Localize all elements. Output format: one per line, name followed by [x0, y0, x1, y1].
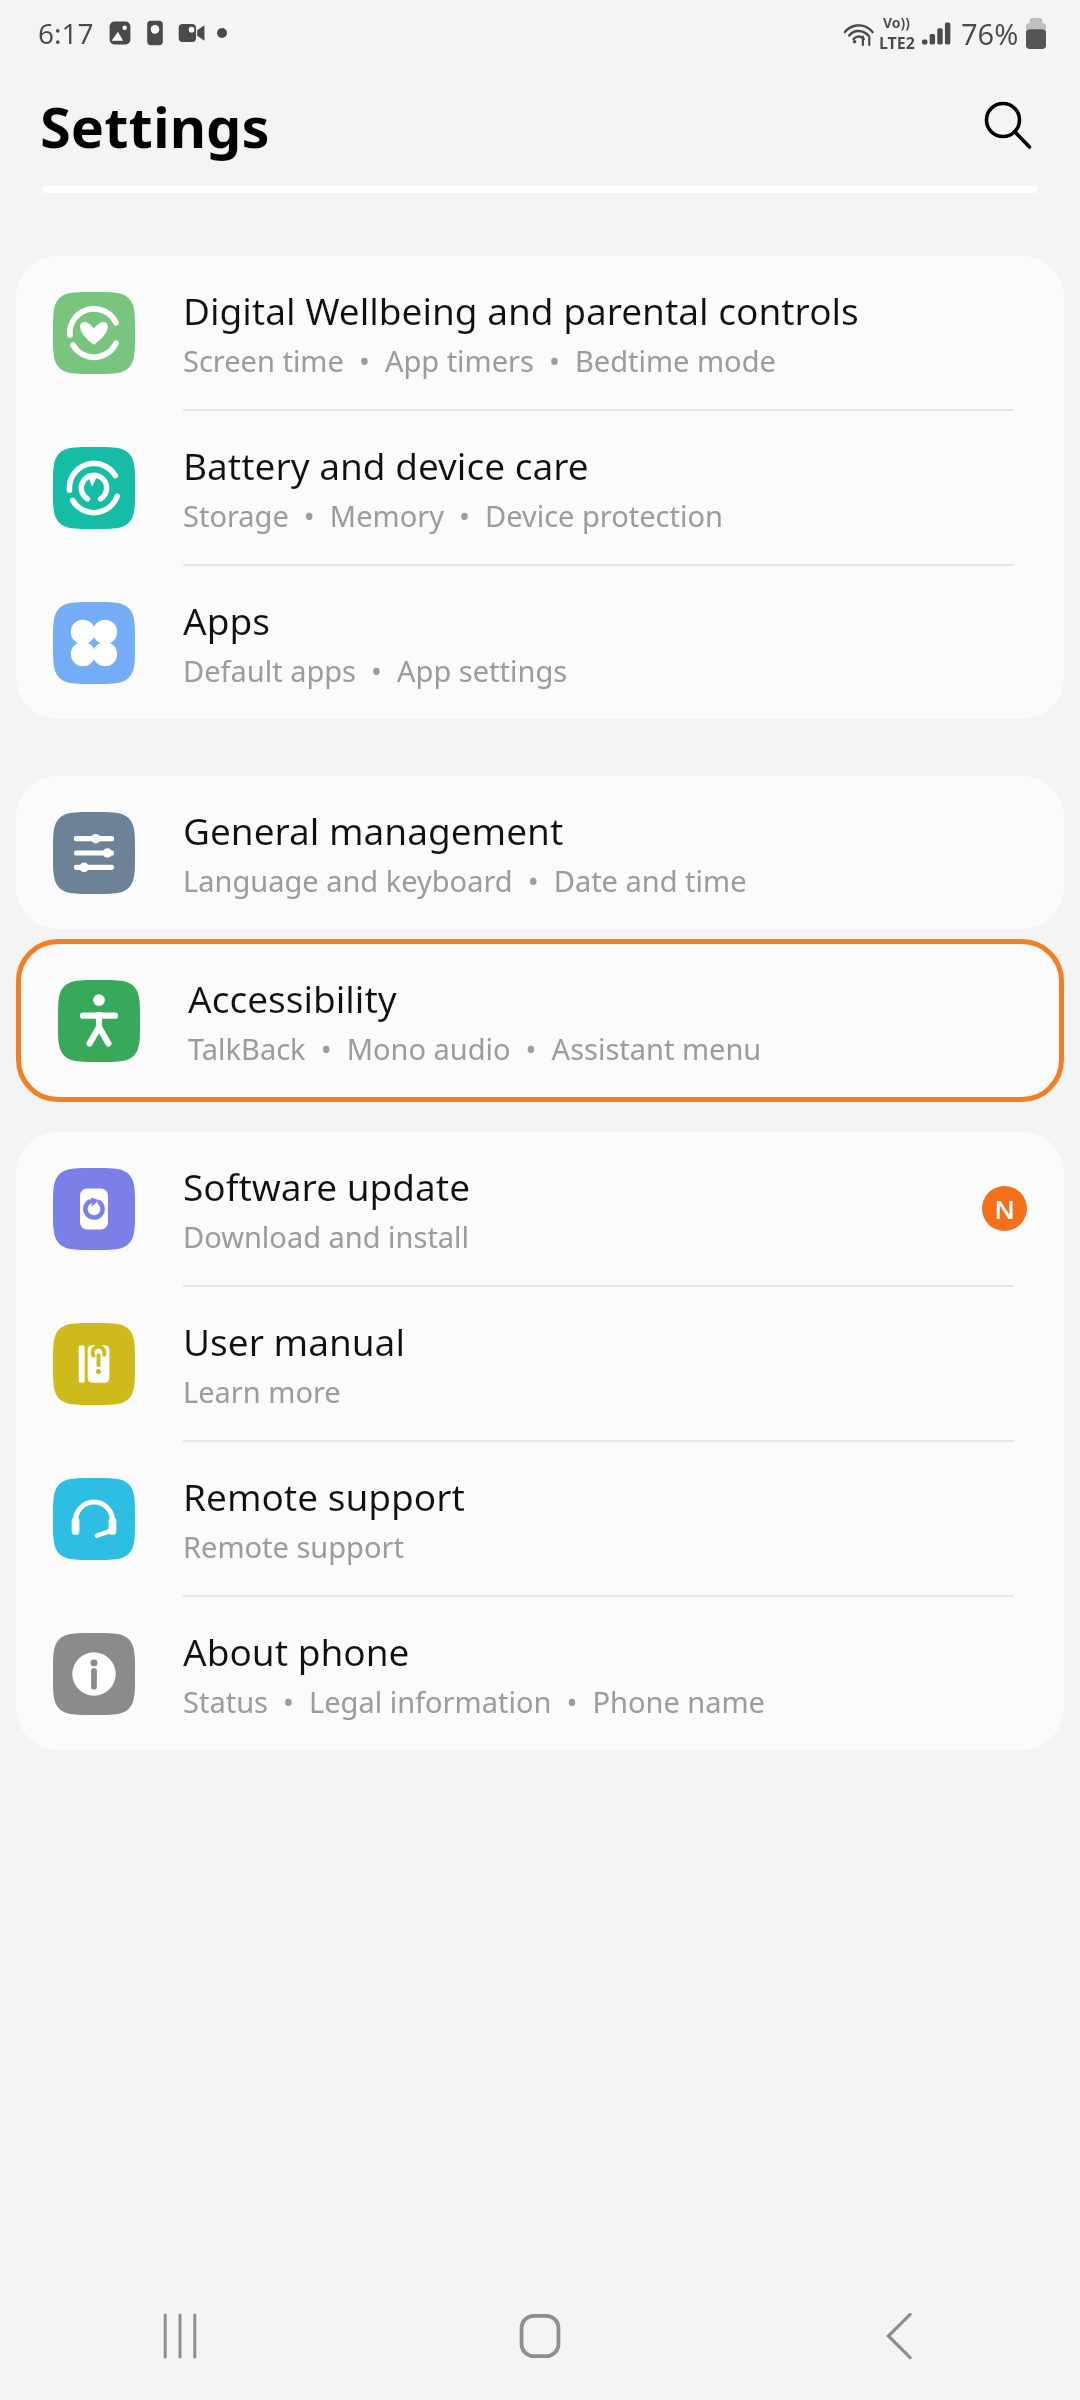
button[interactable]: Accessibility — [21, 944, 1059, 1097]
staticText: About phone — [183, 1626, 410, 1676]
button[interactable]: Back — [720, 2272, 1080, 2400]
staticText: Status • Legal information • Phone name — [183, 1682, 765, 1721]
button[interactable]: User manual — [16, 1287, 1064, 1440]
staticText: Software update — [183, 1161, 471, 1211]
staticText: Learn more — [183, 1372, 341, 1411]
button[interactable]: General management — [16, 776, 1064, 929]
button[interactable]: Remote support — [16, 1442, 1064, 1595]
staticText: Screen time • App timers • Bedtime mode — [183, 341, 776, 380]
button[interactable]: Recent apps — [0, 2272, 360, 2400]
staticText: General management — [183, 805, 564, 855]
staticText: Vo)) — [883, 13, 911, 32]
staticText: Settings — [40, 88, 270, 164]
button[interactable]: Battery and device care — [16, 411, 1064, 564]
button[interactable]: Digital Wellbeing and parental controls — [16, 256, 1064, 409]
staticText: Download and install — [183, 1217, 470, 1256]
button[interactable]: About phone — [16, 1597, 1064, 1750]
staticText: Battery and device care — [183, 440, 589, 490]
staticText: Digital Wellbeing and parental controls — [183, 285, 859, 335]
button[interactable]: Home — [360, 2272, 720, 2400]
staticText: TalkBack • Mono audio • Assistant menu — [188, 1029, 762, 1068]
staticText: Remote support — [183, 1471, 465, 1521]
staticText: Default apps • App settings — [183, 651, 568, 690]
button[interactable]: Search — [966, 84, 1050, 168]
staticText: LTE2 — [879, 32, 915, 54]
staticText: Accessibility — [188, 973, 397, 1023]
button[interactable]: Apps — [16, 566, 1064, 719]
staticText: 76% — [961, 14, 1019, 53]
button[interactable]: Software update — [16, 1132, 1064, 1285]
staticText: 6:17 — [38, 14, 94, 52]
staticText: Storage • Memory • Device protection — [183, 496, 723, 535]
staticText: Remote support — [183, 1527, 404, 1566]
staticText: N — [994, 1191, 1015, 1226]
staticText: User manual — [183, 1316, 405, 1366]
staticText: Language and keyboard • Date and time — [183, 861, 747, 900]
staticText: Apps — [183, 595, 270, 645]
